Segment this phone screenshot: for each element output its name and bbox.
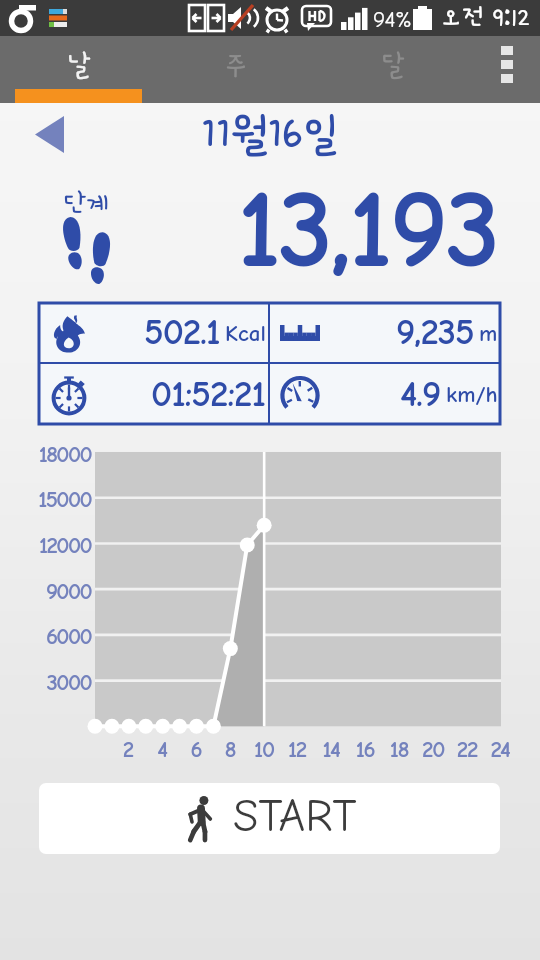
staticText: 502.1: [144, 311, 220, 354]
staticText: 18: [379, 736, 419, 762]
staticText: 12000: [0, 532, 91, 558]
button[interactable]: 날: [0, 36, 157, 89]
staticText: 14: [311, 736, 351, 762]
staticText: 13,193: [237, 165, 498, 287]
staticText: 3000: [0, 669, 91, 695]
staticText: 오전 9:12: [440, 3, 531, 31]
staticText: 4.9: [400, 373, 441, 416]
button[interactable]: 주: [157, 36, 314, 89]
staticText: 16: [345, 736, 385, 762]
staticText: 2: [108, 736, 148, 762]
staticText: km/h: [446, 381, 498, 407]
staticText: 주: [223, 51, 248, 82]
staticText: 18000: [0, 441, 91, 467]
staticText: 22: [447, 736, 487, 762]
staticText: 4: [142, 736, 182, 762]
staticText: 24: [480, 736, 520, 762]
staticText: 9,235: [396, 311, 474, 354]
staticText: 20: [413, 736, 453, 762]
staticText: m: [479, 320, 498, 346]
button[interactable]: More options: [471, 36, 540, 89]
button[interactable]: START: [39, 783, 500, 854]
staticText: 10: [244, 736, 284, 762]
staticText: START: [233, 790, 357, 843]
staticText: 단계: [63, 189, 110, 218]
staticText: 12: [277, 736, 317, 762]
staticText: 8: [210, 736, 250, 762]
staticText: 94%: [373, 6, 412, 32]
staticText: 9000: [0, 578, 91, 604]
staticText: 11월16일: [201, 111, 340, 157]
staticText: Kcal: [225, 320, 266, 346]
button[interactable]: Previous day: [18, 104, 80, 164]
button[interactable]: Speed: [270, 364, 500, 424]
staticText: 날: [66, 51, 91, 82]
button[interactable]: Calories: [39, 303, 268, 362]
staticText: 6000: [0, 623, 91, 649]
staticText: 15000: [0, 486, 91, 512]
button[interactable]: Duration: [39, 364, 268, 424]
button[interactable]: 달: [314, 36, 471, 89]
staticText: 6: [176, 736, 216, 762]
button[interactable]: Distance: [270, 303, 500, 362]
staticText: 달: [380, 51, 405, 82]
staticText: 01:52:21: [151, 373, 266, 416]
